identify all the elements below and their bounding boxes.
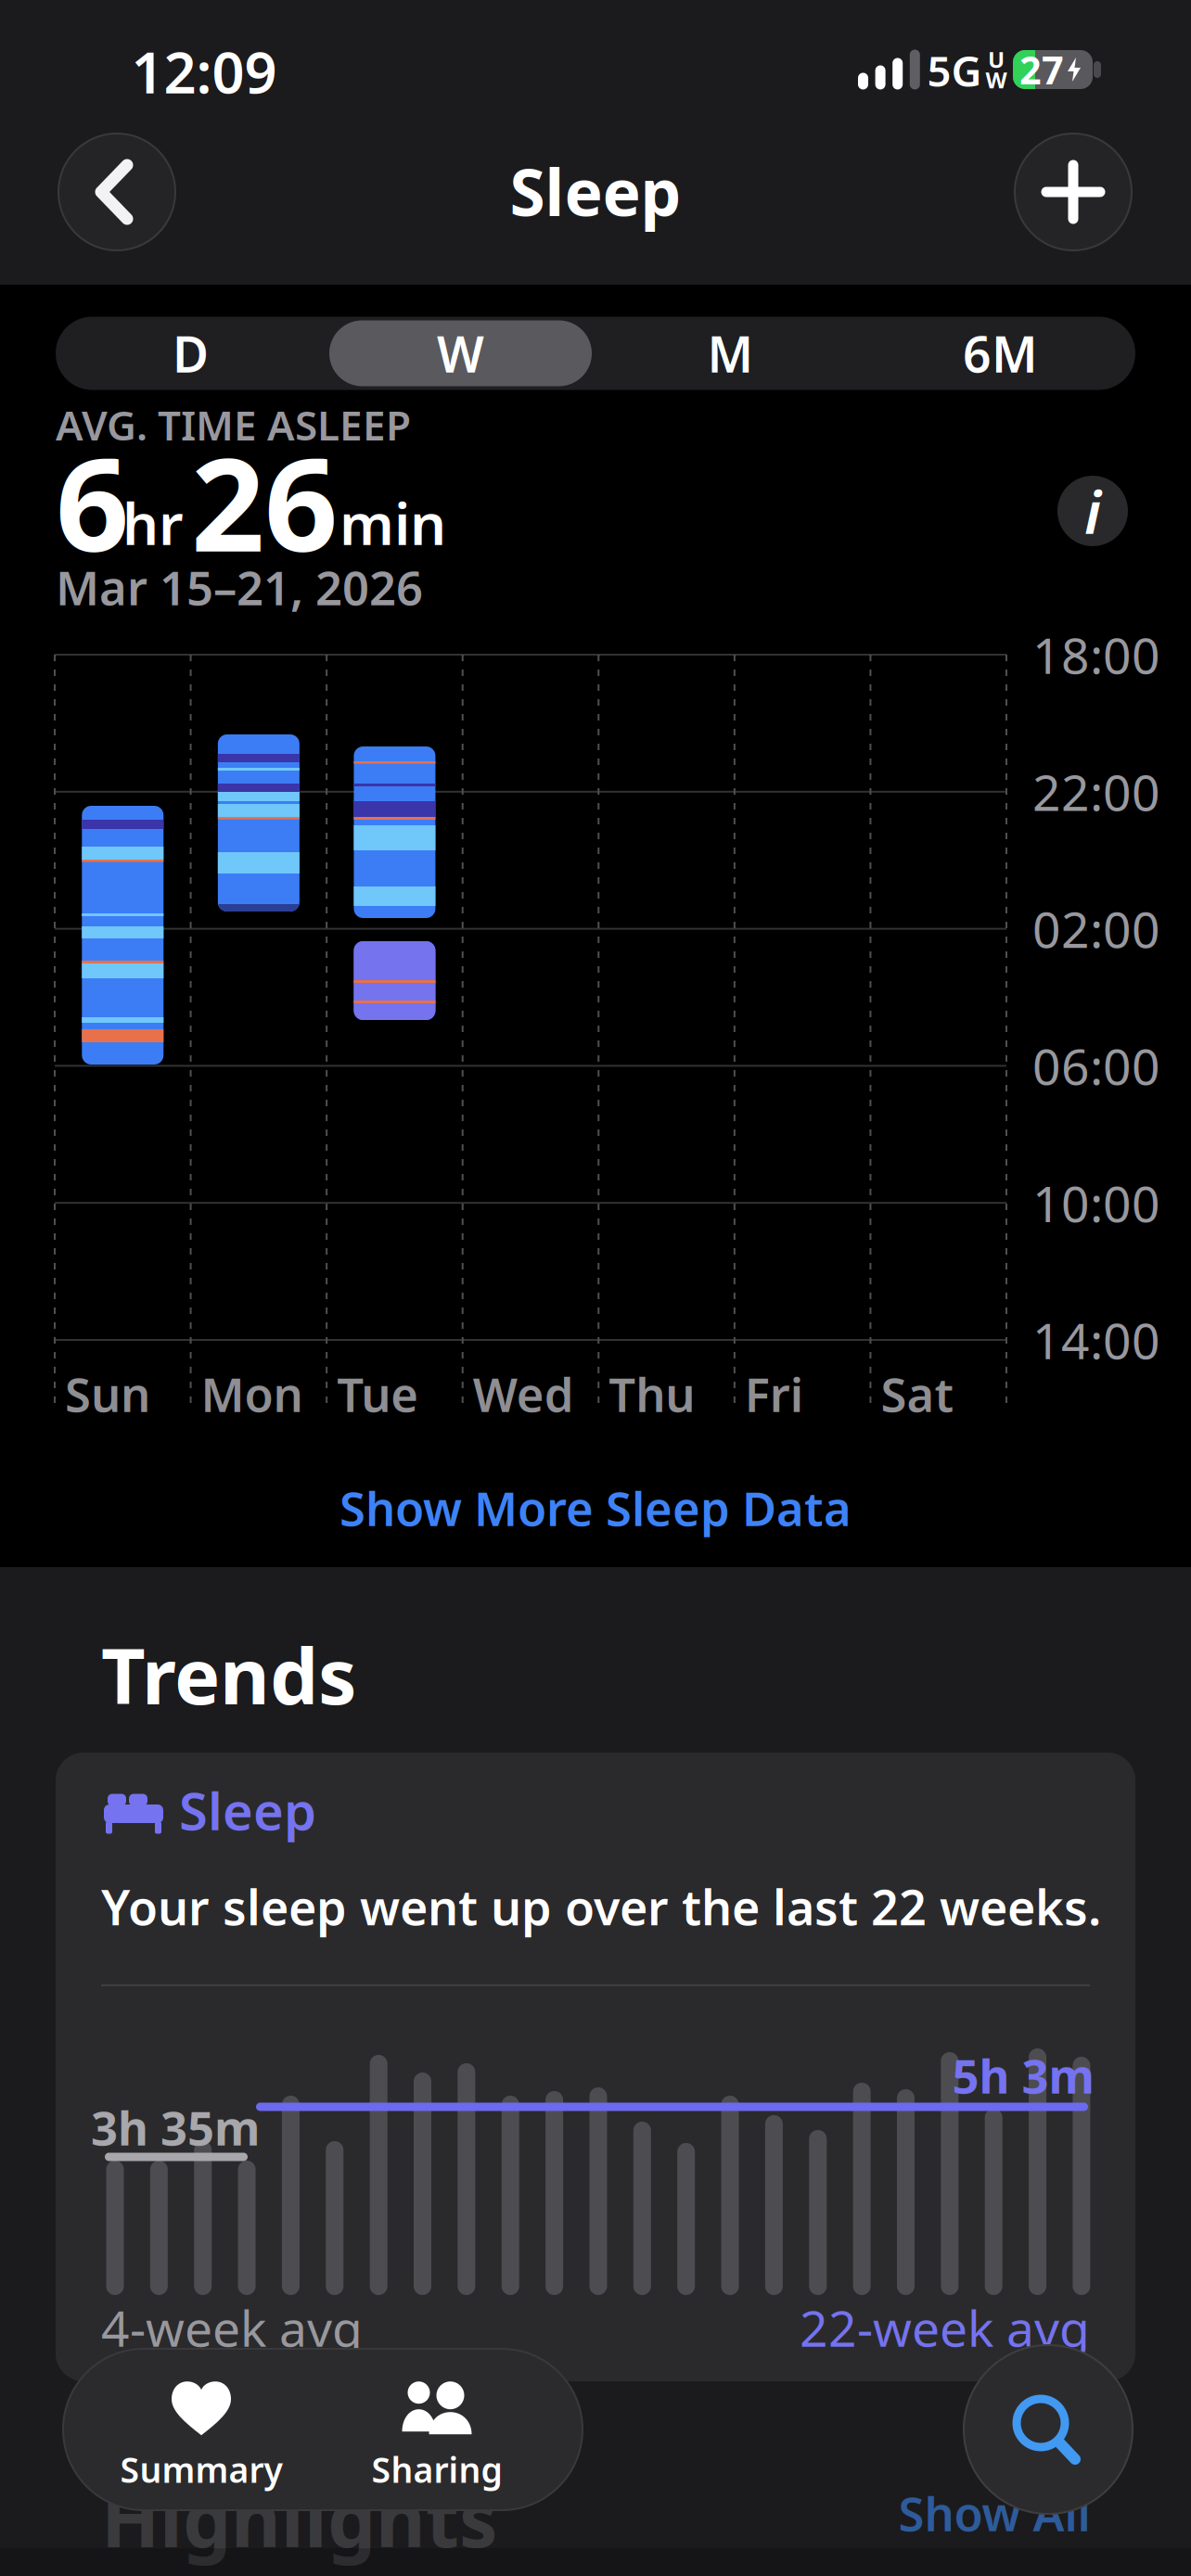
staticText: Thu <box>609 1363 695 1425</box>
staticText: 26 <box>191 416 338 587</box>
staticText: 14:00 <box>1032 1307 1160 1373</box>
staticText: Sleep <box>510 148 681 234</box>
staticText: 4-week avg <box>101 2295 363 2360</box>
staticText: U <box>988 45 1005 74</box>
button[interactable]: M <box>595 317 865 390</box>
staticText: 5h 3m <box>952 2044 1094 2107</box>
staticText: W <box>437 320 484 386</box>
staticText: i <box>1084 472 1101 550</box>
staticText: D <box>173 320 209 386</box>
staticText: Show All <box>898 2482 1090 2544</box>
staticText: hr <box>122 485 184 561</box>
staticText: Wed <box>473 1363 574 1425</box>
staticText: 22:00 <box>1032 759 1160 825</box>
staticText: 02:00 <box>1032 896 1160 962</box>
staticText: W <box>986 65 1007 95</box>
staticText: 6M <box>963 320 1038 386</box>
staticText: Fri <box>745 1363 803 1425</box>
staticText: 10:00 <box>1032 1170 1160 1236</box>
staticText: Sleep <box>179 1776 316 1845</box>
button[interactable]: Add Data <box>1015 134 1132 250</box>
staticText: Show More Sleep Data <box>339 1477 852 1539</box>
button[interactable]: Sharing <box>321 2356 553 2518</box>
staticText: Your sleep went up over the last 22 week… <box>101 1875 1101 1939</box>
staticText: 22-week avg <box>800 2295 1090 2360</box>
staticText: AVG. TIME ASLEEP <box>56 398 411 452</box>
staticText: Sat <box>881 1363 954 1425</box>
button[interactable]: Show More Sleep Data <box>271 1471 920 1545</box>
button[interactable]: About Sleep Data <box>1057 476 1128 546</box>
staticText: Highlights <box>101 2467 497 2568</box>
button[interactable]: 6M <box>865 317 1135 390</box>
staticText: Tue <box>337 1363 418 1425</box>
staticText: Sun <box>65 1363 150 1425</box>
button[interactable]: W <box>326 317 595 390</box>
button[interactable]: Back <box>58 134 175 250</box>
staticText: Mar 15–21, 2026 <box>56 556 423 618</box>
staticText: Sharing <box>371 2446 502 2492</box>
staticText: 6 <box>56 416 129 587</box>
staticText: min <box>339 485 446 561</box>
staticText: 18:00 <box>1032 622 1160 687</box>
staticText: 27 <box>1019 44 1064 95</box>
staticText: 06:00 <box>1032 1033 1160 1099</box>
staticText: 12:09 <box>131 34 277 109</box>
staticText: Summary <box>120 2446 282 2492</box>
staticText: Mon <box>201 1363 303 1425</box>
staticText: 3h 35m <box>91 2096 260 2158</box>
button[interactable]: Search <box>964 2345 1133 2514</box>
staticText: M <box>707 320 754 386</box>
staticText: 5G <box>927 43 982 98</box>
button[interactable]: D <box>56 317 326 390</box>
button[interactable]: Show All <box>874 2480 1115 2545</box>
staticText: Trends <box>101 1624 356 1726</box>
button[interactable]: Summary <box>85 2356 317 2518</box>
button[interactable]: Sleep <box>0 0 1191 2576</box>
